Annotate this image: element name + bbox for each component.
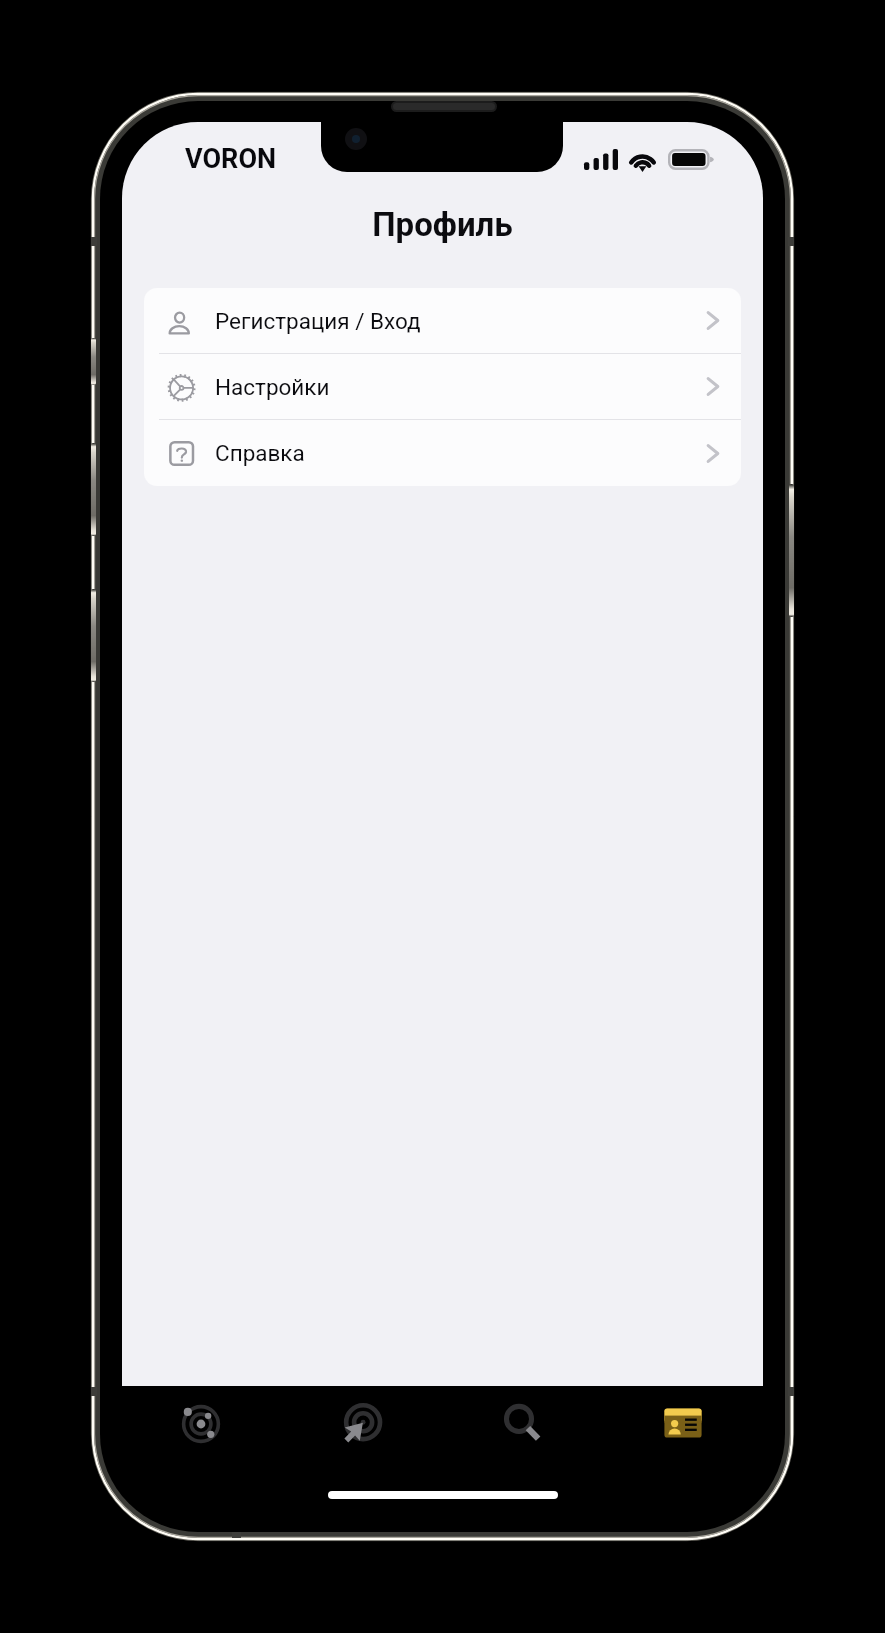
button[interactable]: Справка bbox=[144, 420, 741, 486]
button[interactable]: Настройки bbox=[144, 354, 741, 419]
staticText: Профиль bbox=[122, 205, 763, 244]
staticText: Справка bbox=[215, 440, 305, 466]
button[interactable]: Регистрация / Вход bbox=[144, 288, 741, 353]
staticText: Настройки bbox=[215, 374, 330, 400]
staticText: Регистрация / Вход bbox=[215, 308, 421, 334]
staticText: VORON bbox=[185, 143, 277, 175]
button[interactable]: Search bbox=[475, 1388, 563, 1460]
button[interactable]: Explore bbox=[157, 1388, 245, 1460]
button[interactable]: Discover bbox=[318, 1388, 406, 1460]
button[interactable]: Profile bbox=[639, 1387, 727, 1459]
